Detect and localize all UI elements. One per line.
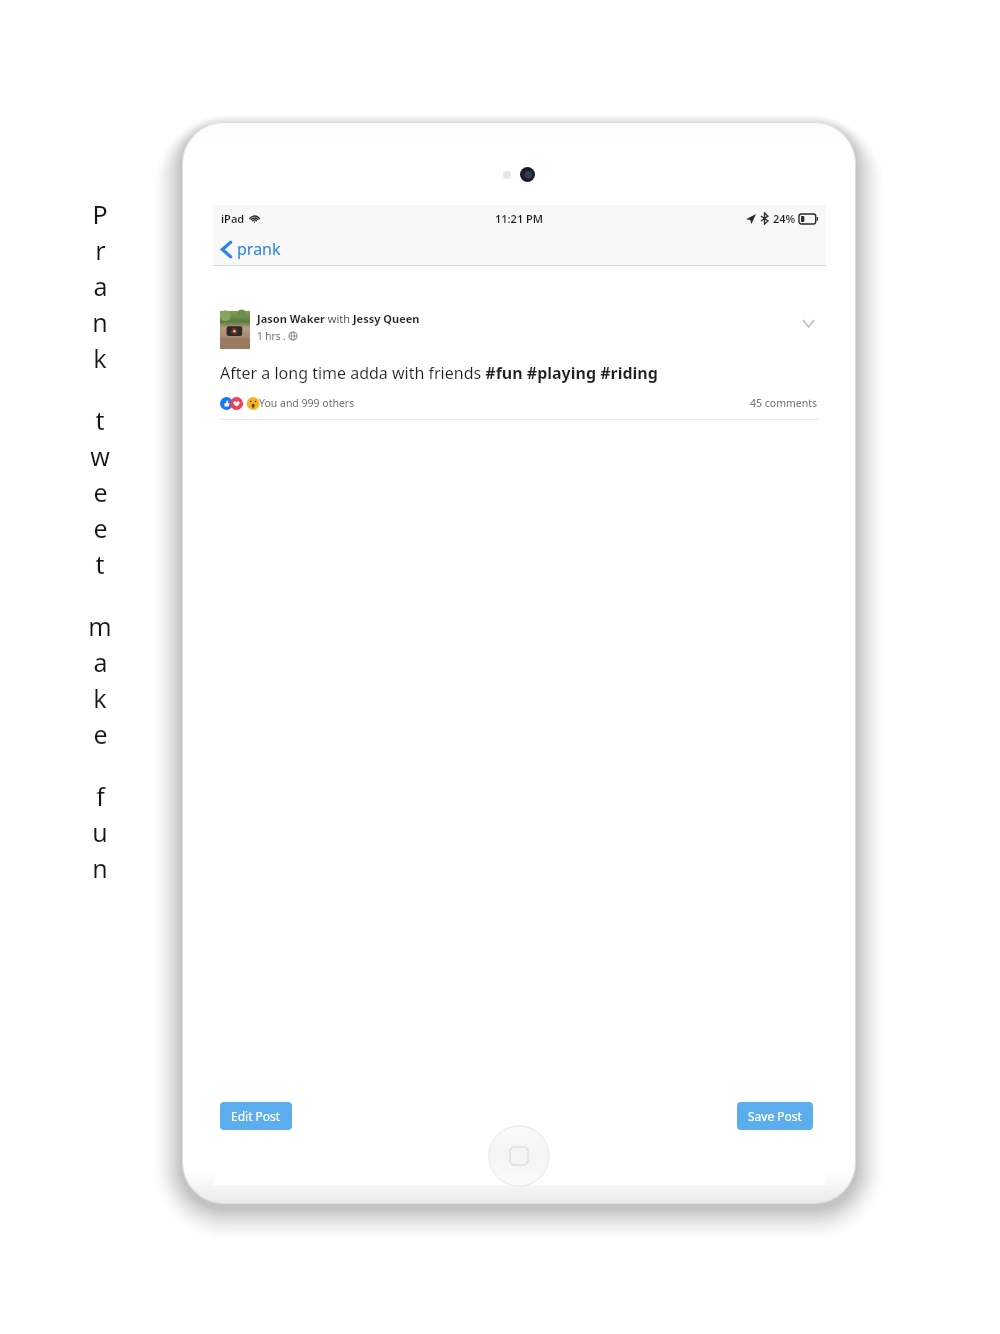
button[interactable]: You and 999 others	[259, 396, 355, 410]
staticText: t	[95, 547, 105, 581]
staticText: Save Post	[748, 1108, 802, 1124]
staticText: n	[92, 305, 108, 339]
staticText: m	[88, 609, 112, 643]
staticText: k	[93, 341, 107, 375]
button[interactable]: Edit Post	[220, 1102, 292, 1130]
button[interactable]: Home	[489, 1126, 549, 1186]
staticText: n	[92, 851, 108, 885]
staticText: Jason Waker with Jessy Queen	[257, 311, 420, 326]
staticText: e	[93, 717, 108, 751]
staticText: k	[93, 681, 107, 715]
staticText: e	[93, 475, 108, 509]
staticText: 24%	[773, 211, 796, 226]
button[interactable]: Save Post	[737, 1102, 813, 1130]
button[interactable]: prank	[219, 234, 283, 264]
staticText: Edit Post	[231, 1108, 281, 1124]
staticText: f	[96, 779, 105, 813]
staticText: u	[92, 815, 108, 849]
button[interactable]: More options	[798, 313, 818, 333]
staticText: After a long time adda with friends #fun…	[220, 362, 658, 384]
staticText: t	[95, 403, 105, 437]
staticText: r	[95, 233, 106, 267]
button[interactable]: 45 comments	[750, 396, 818, 410]
button[interactable]: Jason Waker with Jessy Queen	[213, 311, 826, 420]
staticText: iPad	[221, 211, 245, 226]
staticText: a	[93, 269, 108, 303]
staticText: prank	[237, 238, 281, 260]
staticText: a	[93, 645, 108, 679]
staticText: P	[92, 197, 108, 231]
staticText: 1 hrs .	[257, 329, 289, 343]
staticText: e	[93, 511, 108, 545]
staticText: 11:21 PM	[495, 211, 544, 226]
staticText: w	[90, 439, 110, 473]
